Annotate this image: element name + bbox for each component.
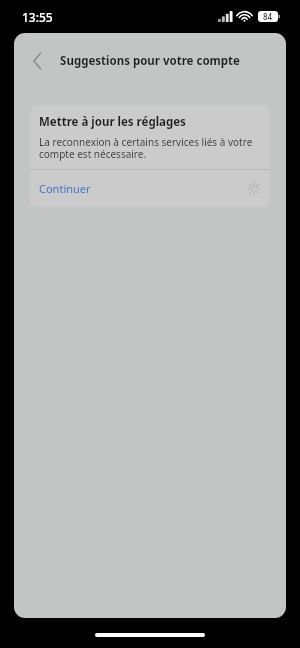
staticText: Suggestions pour votre compte xyxy=(60,53,240,69)
button[interactable]: Retour xyxy=(20,44,54,78)
button[interactable]: Continuer xyxy=(30,170,270,207)
staticText: La reconnexion à certains services liés … xyxy=(39,135,261,161)
staticText: 84 xyxy=(263,11,273,22)
staticText: 13:55 xyxy=(22,9,53,25)
staticText: Mettre à jour les réglages xyxy=(39,114,186,130)
staticText: Continuer xyxy=(39,181,91,196)
